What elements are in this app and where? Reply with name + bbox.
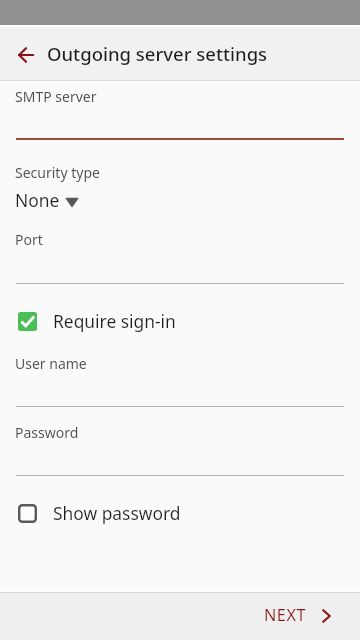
button[interactable]: SMTP server text field	[16, 85, 344, 141]
staticText: Security type	[15, 163, 100, 182]
button[interactable]: Password text field	[16, 421, 344, 476]
staticText: None	[15, 188, 60, 212]
staticText: NEXT	[264, 604, 306, 626]
button[interactable]: Port text field	[16, 228, 344, 284]
staticText: User name	[15, 354, 87, 373]
staticText: Password	[15, 423, 79, 442]
button[interactable]: None	[15, 188, 78, 212]
button[interactable]: Require sign-in	[0, 304, 360, 338]
button[interactable]: Navigate up	[3, 32, 48, 77]
staticText: SMTP server	[15, 87, 97, 106]
staticText: Require sign-in	[53, 309, 176, 333]
button[interactable]: NEXT	[244, 597, 360, 637]
staticText: Show password	[53, 501, 181, 525]
staticText: Port	[15, 230, 43, 249]
button[interactable]: User name text field	[16, 352, 344, 407]
staticText: Outgoing server settings	[47, 41, 268, 66]
button[interactable]: Show password	[0, 496, 360, 530]
